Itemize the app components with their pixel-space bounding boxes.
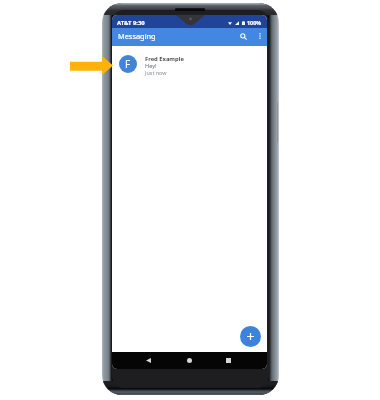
staticText: Hey! xyxy=(145,62,157,70)
staticText: AT&T 9:30 xyxy=(117,19,145,27)
button[interactable]: Search xyxy=(234,28,252,46)
button[interactable]: F xyxy=(112,46,267,79)
staticText: Messaging xyxy=(118,31,156,41)
staticText: 100% xyxy=(247,19,262,26)
button[interactable]: More options xyxy=(253,28,267,46)
button[interactable]: Start new conversation xyxy=(240,326,261,347)
staticText: Fred Example xyxy=(145,55,184,63)
staticText: Just now xyxy=(145,69,167,76)
button[interactable]: Back xyxy=(128,352,168,369)
button[interactable]: Home xyxy=(169,352,209,369)
button[interactable]: Recent apps xyxy=(208,352,248,369)
staticText: F xyxy=(125,57,131,71)
